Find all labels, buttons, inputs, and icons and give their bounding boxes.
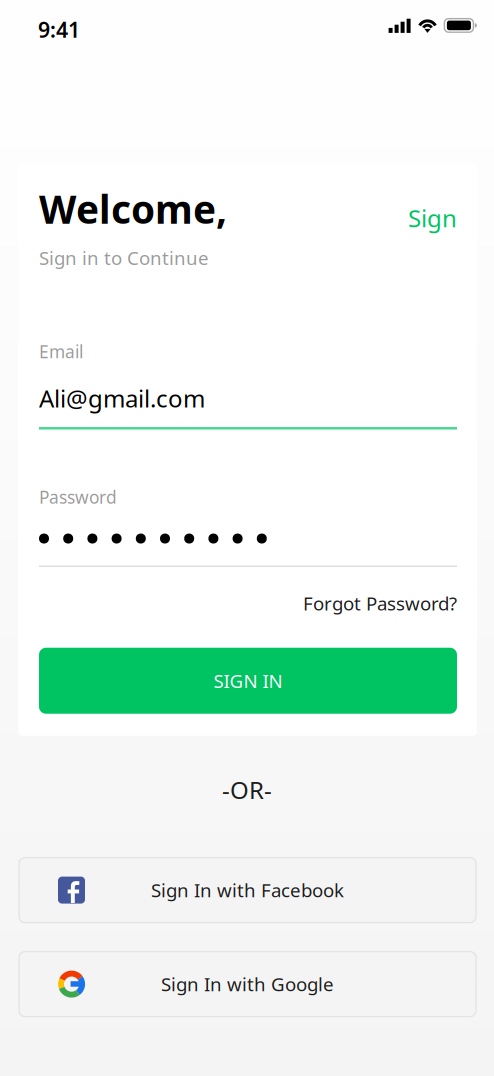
staticText: Sign In with Facebook — [151, 878, 344, 902]
staticText: Password — [39, 485, 117, 508]
staticText: Ali@gmail.com — [39, 382, 205, 414]
staticText: SIGN IN — [213, 668, 282, 693]
button[interactable]: Sign — [408, 183, 457, 234]
staticText: 9:41 — [38, 15, 80, 44]
staticText: Sign — [408, 202, 457, 234]
staticText: Email — [39, 340, 83, 363]
button[interactable]: Forgot Password? — [303, 591, 457, 616]
button[interactable]: Sign In with Google — [19, 952, 476, 1017]
button[interactable]: SIGN IN — [39, 648, 457, 714]
staticText: Welcome, — [39, 183, 227, 234]
staticText: -OR- — [222, 774, 272, 806]
button[interactable]: Sign In with Facebook — [19, 858, 476, 923]
staticText: Sign in to Continue — [39, 245, 209, 270]
staticText: Forgot Password? — [303, 591, 457, 616]
staticText: Sign In with Google — [161, 972, 334, 996]
